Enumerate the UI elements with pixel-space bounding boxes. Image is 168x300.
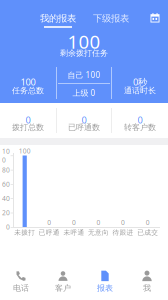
staticText: 下级报表	[93, 13, 129, 24]
staticText: 上级 0	[72, 87, 95, 98]
staticText: 未拨打	[14, 228, 35, 237]
staticText: 20	[2, 208, 10, 217]
staticText: 报表	[97, 283, 113, 293]
staticText: 100	[2, 147, 10, 164]
staticText: 未呼通	[63, 228, 84, 237]
staticText: 0	[137, 114, 142, 126]
staticText: 剩余拨打任务	[60, 48, 108, 58]
staticText: 已成交	[137, 228, 158, 237]
staticText: 我	[143, 283, 151, 293]
staticText: 0	[47, 218, 51, 227]
button[interactable]: 我的报表	[35, 12, 81, 36]
staticText: 60	[2, 180, 10, 189]
staticText: 40	[2, 194, 10, 203]
staticText: 拨打总数	[12, 122, 44, 132]
staticText: 0秒	[133, 76, 147, 88]
staticText: 0	[96, 218, 100, 227]
button[interactable]: 报表	[84, 264, 126, 300]
staticText: 0	[72, 218, 76, 227]
staticText: 0	[25, 114, 30, 126]
staticText: 0	[6, 223, 10, 231]
staticText: 通话时长	[124, 86, 156, 95]
staticText: 0	[81, 114, 86, 126]
staticText: 客户	[55, 283, 71, 293]
staticText: 电话	[13, 283, 29, 293]
button[interactable]: 我	[126, 264, 168, 300]
staticText: 任务总数	[12, 86, 44, 95]
staticText: 转客户数	[124, 122, 156, 132]
button[interactable]: 客户	[42, 264, 84, 300]
button[interactable]: Select date	[146, 9, 164, 27]
staticText: 我的报表	[40, 13, 76, 24]
button[interactable]: 电话	[0, 264, 42, 300]
staticText: 自己 100	[67, 70, 100, 80]
staticText: 已呼通数	[68, 122, 100, 132]
staticText: 待跟进	[113, 228, 134, 237]
staticText: 0	[146, 218, 150, 227]
staticText: 0	[121, 218, 125, 227]
staticText: 无意向	[88, 228, 109, 237]
staticText: 100	[67, 29, 100, 54]
staticText: 100	[20, 76, 35, 88]
button[interactable]: 下级报表	[88, 12, 134, 36]
staticText: 80	[2, 165, 10, 174]
staticText: 100	[19, 147, 31, 155]
staticText: 已呼通	[39, 228, 60, 237]
